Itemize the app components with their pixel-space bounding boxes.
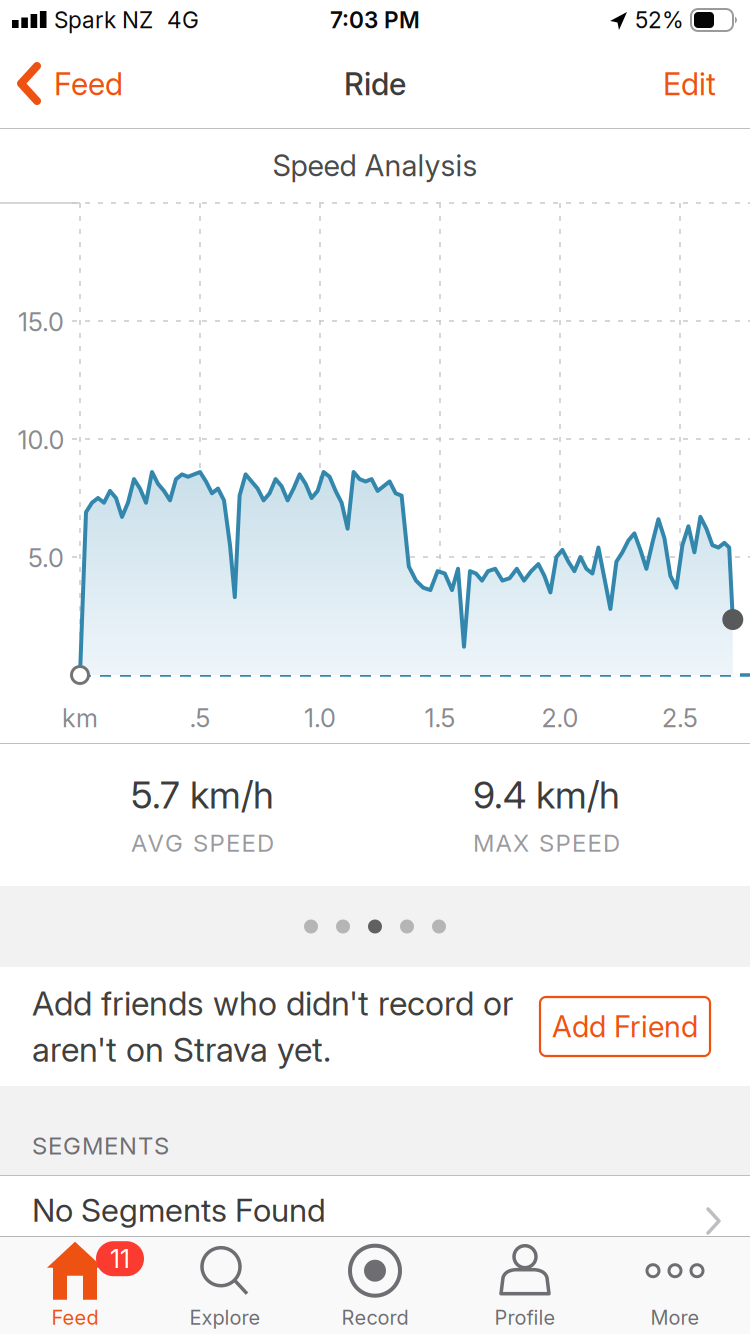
staticText: 2.0 [541,703,578,733]
staticText: 2.5 [662,703,698,733]
staticText: 5.0 [28,543,64,573]
button[interactable]: Add Friend [540,998,710,1054]
staticText: Explore [189,1306,260,1329]
staticText: Record [341,1306,408,1329]
button[interactable]: More [600,1242,750,1329]
staticText: Speed Analysis [272,148,477,183]
staticText: 1.0 [304,703,336,733]
staticText: .5 [189,703,210,733]
staticText: 15.0 [18,307,64,337]
staticText: Profile [494,1306,555,1329]
staticText: MAX SPEED [473,829,620,857]
staticText: Feed [54,66,123,102]
button[interactable]: Edit [663,66,716,102]
staticText: No Segments Found [32,1191,326,1229]
staticText: AVG SPEED [131,829,274,857]
button[interactable]: 11 [0,1242,150,1329]
staticText: 4G [167,7,199,33]
staticText: Ride [344,66,406,102]
staticText: SEGMENTS [32,1132,169,1160]
staticText: 5.7 km/h [131,773,274,817]
staticText: km [62,703,98,733]
staticText: aren't on Strava yet. [32,1030,331,1069]
staticText: Feed [51,1306,98,1329]
staticText: 52% [635,7,684,33]
button[interactable]: Explore [150,1242,300,1329]
staticText: Spark NZ [54,7,153,33]
staticText: 1.5 [424,703,455,733]
button[interactable]: Profile [450,1242,600,1329]
button[interactable]: Feed [17,62,123,106]
staticText: 11 [110,1244,130,1274]
button[interactable]: No Segments Found [0,1176,750,1236]
staticText: Add friends who didn't record or [32,984,513,1023]
button[interactable]: Record [300,1242,450,1329]
staticText: 7:03 PM [330,7,420,33]
staticText: 10.0 [17,425,64,455]
staticText: More [650,1306,699,1329]
staticText: Edit [663,66,716,102]
staticText: Add Friend [552,1009,698,1044]
staticText: 9.4 km/h [473,773,620,817]
